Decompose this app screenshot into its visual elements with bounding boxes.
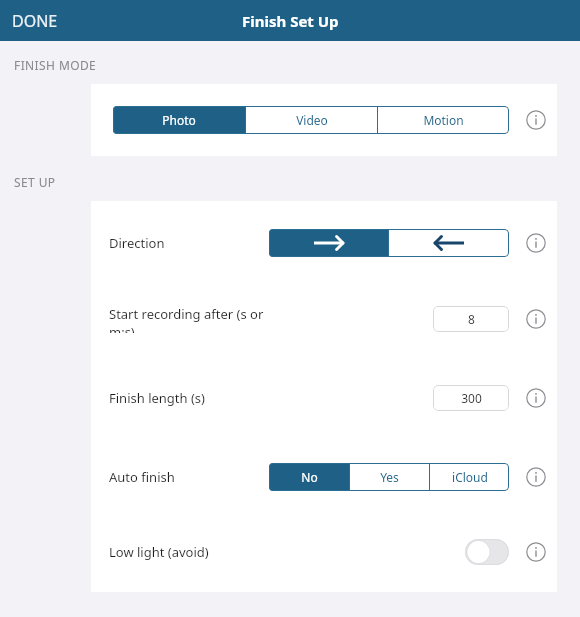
staticText: DONE <box>12 10 58 32</box>
button[interactable]: No <box>269 463 349 491</box>
staticText: Direction <box>109 234 165 252</box>
staticText: iCloud <box>452 469 488 485</box>
staticText: Finish Set Up <box>242 11 339 31</box>
staticText: 300 <box>461 390 482 406</box>
staticText: Video <box>296 112 328 128</box>
staticText: Low light (avoid) <box>109 543 209 561</box>
button[interactable]: iCloud <box>430 463 509 491</box>
button[interactable]: More information <box>523 385 549 411</box>
staticText: Motion <box>423 112 464 128</box>
button[interactable]: Forward direction <box>269 229 388 257</box>
staticText: No <box>301 469 318 485</box>
button[interactable]: Photo <box>113 106 245 134</box>
staticText: Start recording after (s or m:s) <box>109 305 269 333</box>
button[interactable]: DONE <box>0 4 70 38</box>
staticText: Finish length (s) <box>109 389 205 407</box>
staticText: Auto finish <box>109 468 175 486</box>
button[interactable]: More information <box>523 539 549 565</box>
staticText: Photo <box>162 112 196 128</box>
staticText: Yes <box>380 469 399 485</box>
staticText: FINISH MODE <box>14 57 97 73</box>
button[interactable]: More information <box>523 230 549 256</box>
button[interactable]: More information <box>523 107 549 133</box>
button[interactable]: Low light toggle, off <box>465 539 509 565</box>
button[interactable]: Reverse direction <box>389 229 509 257</box>
button[interactable]: 8 <box>433 306 509 332</box>
staticText: SET UP <box>14 174 56 190</box>
button[interactable]: 300 <box>433 385 509 411</box>
button[interactable]: Video <box>246 106 377 134</box>
button[interactable]: More information <box>523 306 549 332</box>
button[interactable]: Yes <box>350 463 429 491</box>
staticText: 8 <box>468 311 475 327</box>
button[interactable]: More information <box>523 464 549 490</box>
button[interactable]: Motion <box>378 106 509 134</box>
